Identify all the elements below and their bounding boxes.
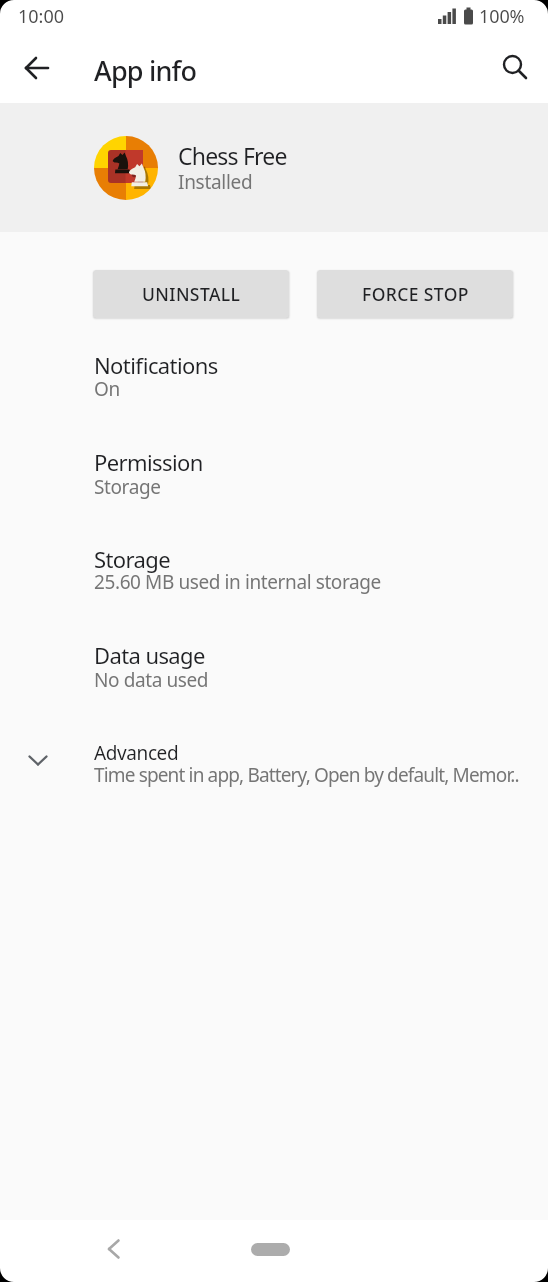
staticText: Notifications [94,350,218,380]
button[interactable]: Advanced [0,727,548,807]
staticText: Advanced [94,740,179,766]
button[interactable] [14,45,60,91]
staticText: FORCE STOP [362,282,469,306]
staticText: Time spent in app, Battery, Open by defa… [94,762,519,788]
staticText: Chess Free [178,140,287,171]
button[interactable] [89,1225,137,1273]
button[interactable]: FORCE STOP [317,270,513,318]
staticText: 25.60 MB used in internal storage [94,569,381,595]
button[interactable] [251,1243,290,1256]
button[interactable]: Storage [0,534,548,630]
staticText: Storage [94,544,171,574]
staticText: App info [94,52,197,89]
button[interactable]: UNINSTALL [93,270,289,318]
button[interactable]: Notifications [0,341,548,437]
button[interactable]: Data usage [0,630,548,727]
staticText: Data usage [94,640,205,670]
staticText: UNINSTALL [142,282,241,306]
staticText: No data used [94,667,209,693]
button[interactable] [492,44,538,90]
staticText: 10:00 [18,4,65,29]
staticText: On [94,376,120,402]
staticText: 100% [479,4,525,29]
staticText: Installed [178,169,253,195]
staticText: Permission [94,447,203,477]
staticText: Storage [94,474,161,500]
button[interactable]: Permission [0,437,548,534]
